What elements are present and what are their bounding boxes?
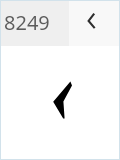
staticText: 8249 [4, 9, 50, 36]
button[interactable]: 8249 [0, 0, 69, 46]
button[interactable]: Back [69, 0, 120, 46]
